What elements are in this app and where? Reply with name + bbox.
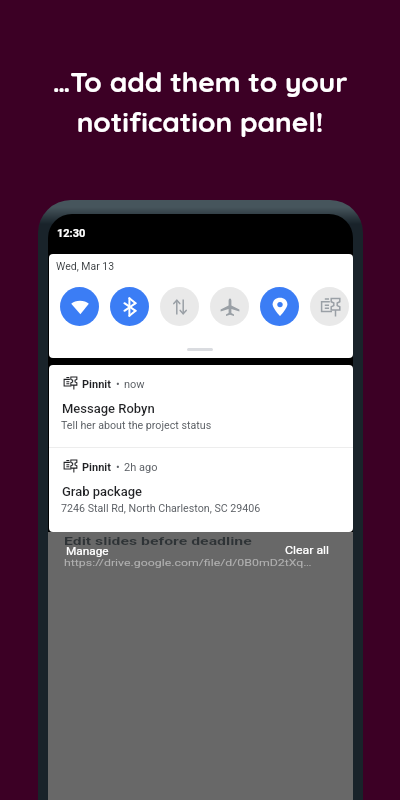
staticText: …To add them to your notification panel!	[0, 64, 400, 139]
staticText: Pinnit	[82, 378, 111, 391]
staticText: now	[124, 378, 145, 391]
staticText: Tell her about the project status	[61, 419, 212, 432]
staticText: 7246 Stall Rd, North Charleston, SC 2940…	[61, 502, 261, 515]
staticText: Grab package	[62, 484, 142, 499]
button[interactable]: Clear all	[281, 544, 319, 556]
staticText: •	[116, 461, 120, 474]
button[interactable]: Manage	[62, 546, 99, 558]
button[interactable]: Bluetooth	[110, 287, 149, 326]
staticText: 12:30	[57, 227, 86, 240]
button[interactable]: Location	[260, 287, 299, 326]
button[interactable]: Wi-Fi	[60, 287, 99, 326]
staticText: Pinnit	[82, 461, 111, 474]
staticText: 2h ago	[124, 461, 158, 474]
button[interactable]: Pinnit	[310, 287, 349, 326]
staticText: Edit slides before deadline	[64, 534, 253, 548]
button[interactable]: Airplane mode	[210, 287, 249, 326]
staticText: Clear all	[285, 544, 329, 556]
staticText: https://drive.google.com/file/d/0B0mD2tX…	[64, 558, 312, 569]
staticText: Message Robyn	[62, 401, 155, 416]
staticText: •	[116, 378, 120, 391]
staticText: Wed, Mar 13	[56, 260, 115, 272]
button[interactable]: Pinnit	[49, 448, 353, 532]
button[interactable]: Mobile data	[160, 287, 199, 326]
staticText: Manage	[66, 546, 109, 558]
button[interactable]: Pinnit	[49, 365, 353, 447]
